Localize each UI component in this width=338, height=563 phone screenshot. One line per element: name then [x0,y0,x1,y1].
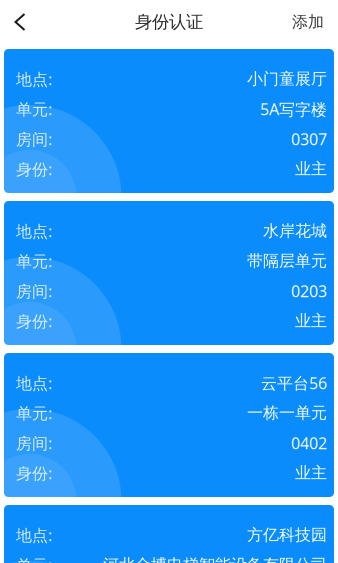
button[interactable]: 添加 [292,12,324,32]
staticText: 添加 [292,12,324,32]
staticText: 房间: [16,280,52,302]
button[interactable]: 地点: [4,49,334,193]
staticText: 业主 [295,311,327,331]
staticText: 0307 [291,128,327,150]
staticText: 身份: [16,158,52,180]
button[interactable]: 地点: [4,353,334,497]
staticText: 业主 [295,463,327,483]
staticText: 地点: [16,372,52,394]
staticText: 0402 [291,432,327,454]
staticText: 地点: [16,68,52,90]
staticText: 云平台56 [261,372,327,394]
staticText: 带隔层单元 [247,251,327,271]
staticText: 单元: [16,554,52,563]
staticText: 身份: [16,310,52,332]
staticText: 房间: [16,432,52,454]
staticText: 房间: [16,128,52,150]
staticText: 身份: [16,462,52,484]
staticText: 单元: [16,250,52,272]
staticText: 身份认证 [135,11,203,33]
button[interactable]: 地点: [4,505,334,563]
staticText: 河北金博电梯智能设备有限公司 [103,555,327,563]
staticText: 单元: [16,402,52,424]
staticText: 0203 [291,280,327,302]
staticText: 水岸花城 [263,221,327,241]
button[interactable]: 地点: [4,201,334,345]
staticText: 小门童展厅 [247,69,327,89]
staticText: 地点: [16,524,52,546]
staticText: 单元: [16,98,52,120]
staticText: 方亿科技园 [247,525,327,545]
staticText: 业主 [295,159,327,179]
button[interactable]: Back [7,7,33,37]
staticText: 一栋一单元 [247,403,327,423]
staticText: 地点: [16,220,52,242]
staticText: 5A写字楼 [260,98,327,120]
